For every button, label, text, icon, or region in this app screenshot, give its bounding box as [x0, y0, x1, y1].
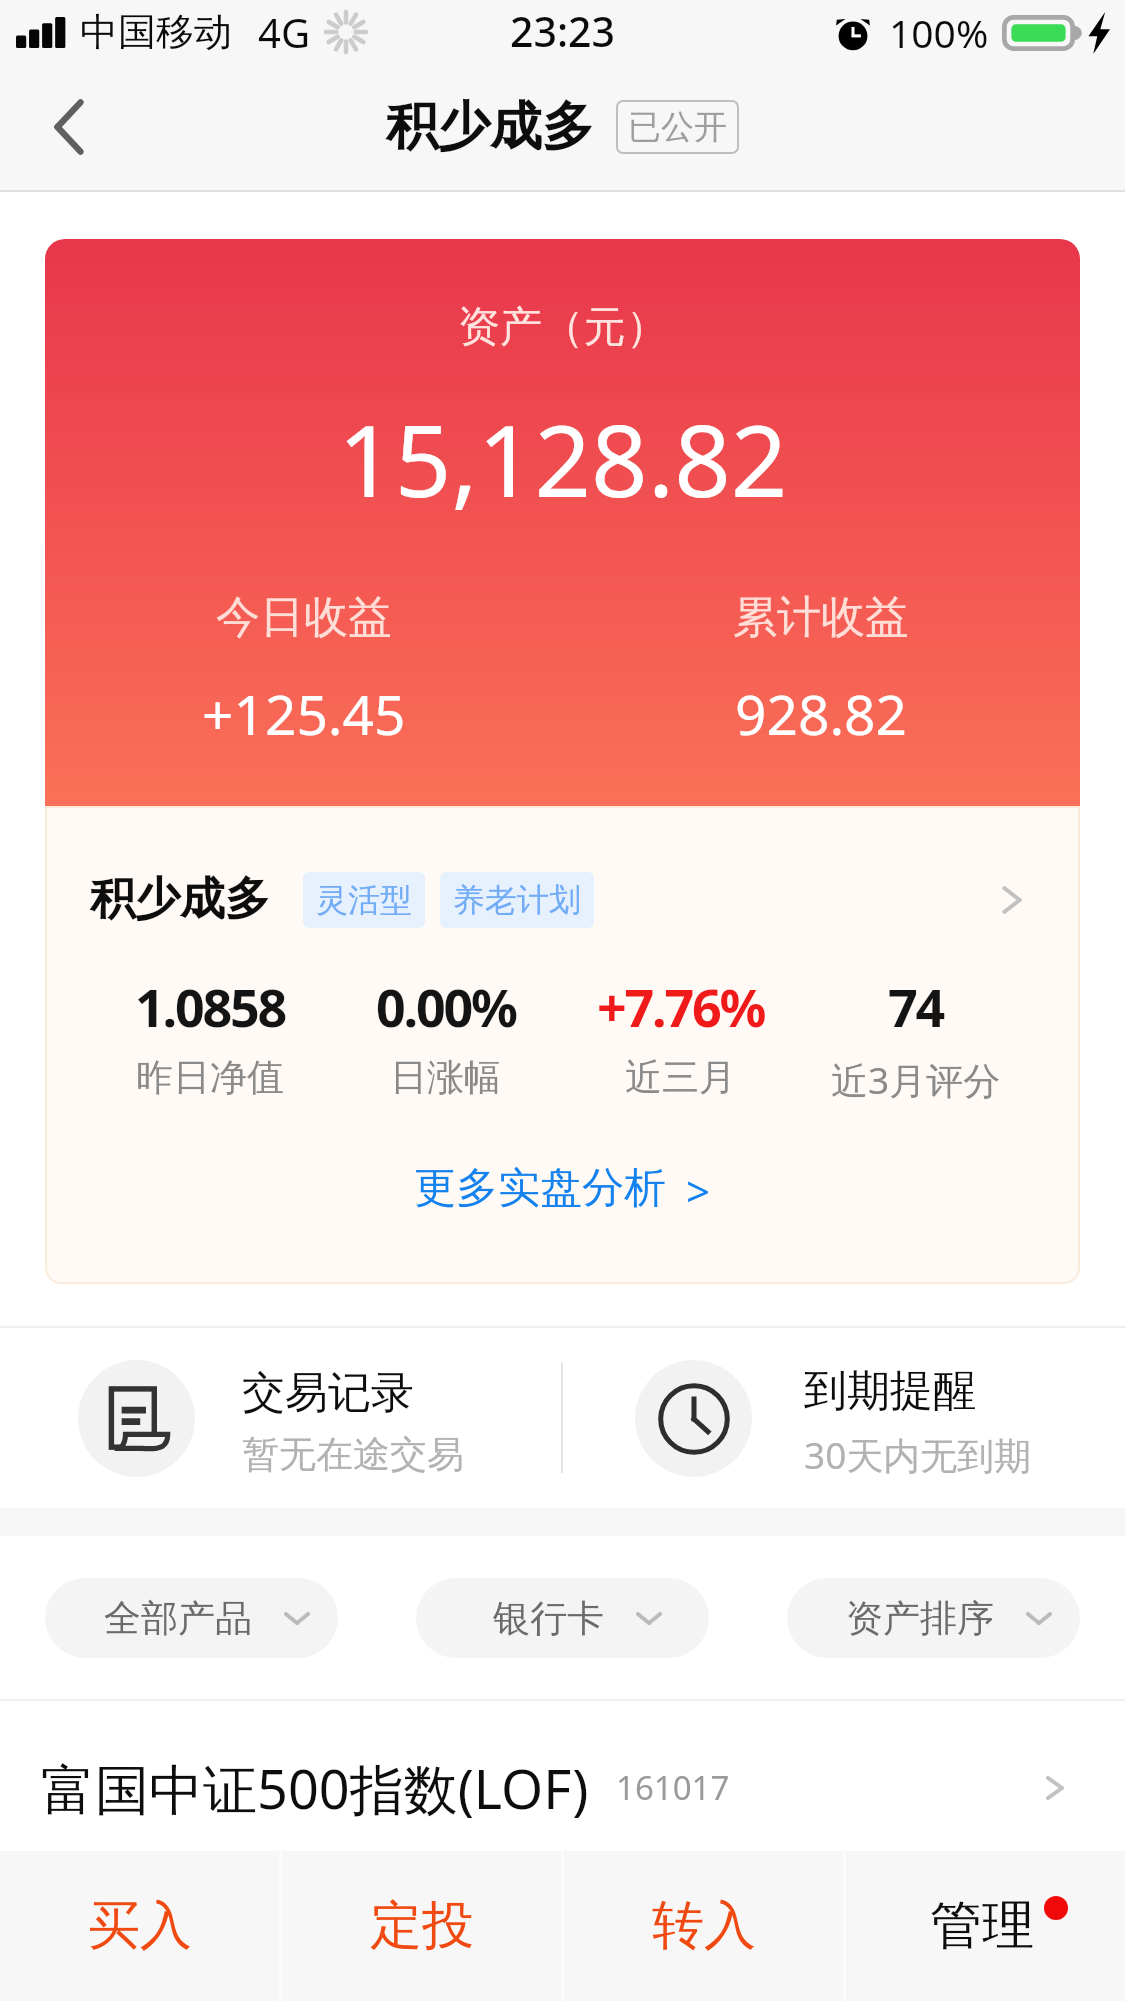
staticText: 养老计划	[453, 880, 581, 920]
staticText: 30天内无到期	[804, 1429, 1032, 1480]
staticText: 4G	[258, 5, 310, 59]
button[interactable]: 全部产品	[45, 1578, 338, 1658]
staticText: 累计收益	[733, 590, 909, 645]
button[interactable]: 到期提醒	[563, 1328, 1125, 1508]
staticText: >	[686, 1162, 711, 1212]
staticText: 100%	[889, 6, 989, 59]
staticText: 银行卡	[493, 1595, 604, 1642]
staticText: 中国移动	[80, 8, 232, 56]
staticText: 928.82	[735, 676, 908, 751]
staticText: 近3月评分	[831, 1054, 1001, 1105]
staticText: 买入	[88, 1893, 192, 1959]
button[interactable]: 银行卡	[416, 1578, 709, 1658]
button[interactable]: 转入	[564, 1851, 843, 2001]
staticText: 定投	[370, 1893, 474, 1959]
staticText: 1.0858	[135, 971, 286, 1042]
staticText: 富国中证500指数(LOF)	[41, 1751, 589, 1825]
staticText: 15,128.82	[338, 391, 788, 526]
button[interactable]: 积少成多	[45, 806, 1080, 1284]
staticText: 积少成多	[90, 871, 270, 928]
staticText: 已公开	[628, 106, 727, 148]
staticText: 管理	[930, 1893, 1034, 1959]
button[interactable]: 定投	[282, 1851, 561, 2001]
button[interactable]: 管理	[846, 1851, 1125, 2001]
button[interactable]: 交易记录	[0, 1328, 561, 1508]
staticText: 交易记录	[242, 1366, 414, 1420]
staticText: 日涨幅	[390, 1054, 501, 1101]
staticText: 近三月	[625, 1054, 736, 1101]
staticText: 今日收益	[216, 590, 392, 645]
staticText: 昨日净值	[136, 1054, 284, 1101]
button[interactable]: 富国中证500指数(LOF)	[0, 1701, 1125, 1850]
staticText: 到期提醒	[804, 1364, 976, 1418]
button[interactable]: Back	[14, 72, 124, 182]
staticText: 161017	[616, 1765, 730, 1810]
staticText: 暂无在途交易	[242, 1431, 464, 1478]
button[interactable]: 资产排序	[787, 1578, 1080, 1658]
staticText: 积少成多	[386, 94, 594, 160]
staticText: 转入	[652, 1893, 756, 1959]
staticText: 灵活型	[316, 880, 412, 920]
staticText: 全部产品	[104, 1595, 252, 1642]
button[interactable]: 更多实盘分析	[45, 1142, 1080, 1212]
staticText: 资产排序	[846, 1595, 994, 1642]
staticText: 23:23	[510, 3, 615, 59]
staticText: 更多实盘分析	[414, 1162, 666, 1212]
staticText: +125.45	[202, 676, 406, 751]
staticText: 0.00%	[376, 971, 516, 1042]
staticText: 74	[888, 971, 944, 1042]
button[interactable]: 买入	[0, 1851, 279, 2001]
staticText: +7.76%	[597, 971, 765, 1042]
staticText: 资产（元）	[458, 301, 668, 354]
